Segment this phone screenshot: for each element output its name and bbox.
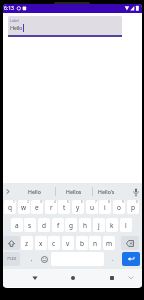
button[interactable] — [39, 252, 50, 266]
staticText: t — [63, 203, 66, 212]
staticText: u — [90, 203, 95, 212]
staticText: j — [98, 221, 100, 230]
button[interactable]: w — [18, 200, 30, 214]
staticText: f — [57, 221, 60, 230]
button[interactable]: v — [62, 236, 74, 250]
staticText: 7 — [95, 200, 97, 204]
staticText: p — [131, 203, 135, 212]
staticText: x — [39, 239, 43, 248]
staticText: 8 — [108, 200, 110, 204]
button[interactable]: z — [21, 236, 33, 250]
button[interactable]: o — [113, 200, 125, 214]
staticText: 0 — [136, 200, 138, 204]
staticText: , — [31, 255, 33, 263]
staticText: k — [110, 221, 114, 230]
button[interactable]: g — [65, 218, 77, 232]
button[interactable]: l — [120, 218, 132, 232]
button[interactable]: b — [76, 236, 88, 250]
staticText: q — [8, 203, 12, 212]
staticText: h — [83, 221, 88, 230]
button[interactable]: ?123 — [3, 252, 20, 266]
button[interactable]: h — [79, 218, 91, 232]
staticText: m — [106, 239, 113, 248]
staticText: c — [52, 239, 56, 248]
staticText: v — [66, 239, 70, 248]
button[interactable]: q — [4, 200, 16, 214]
staticText: l — [125, 221, 127, 230]
button[interactable]: e — [31, 200, 43, 214]
button[interactable] — [66, 269, 80, 287]
staticText: 6 — [81, 200, 83, 204]
button[interactable] — [105, 269, 119, 287]
button[interactable]: Hellos — [57, 184, 91, 199]
staticText: Hellos — [66, 188, 82, 195]
button[interactable]: i — [99, 200, 111, 214]
staticText: 5 — [67, 200, 69, 204]
staticText: Label — [10, 18, 20, 23]
staticText: ?123 — [7, 256, 17, 262]
button[interactable]: n — [89, 236, 101, 250]
staticText: 4 — [54, 200, 56, 204]
button[interactable]: . — [108, 252, 118, 266]
staticText: e — [35, 203, 39, 212]
staticText: i — [104, 203, 106, 212]
staticText: Hello's — [98, 188, 115, 195]
staticText: Hello — [10, 24, 23, 32]
button[interactable]: r — [45, 200, 57, 214]
staticText: r — [50, 203, 53, 212]
staticText: 1 — [13, 200, 15, 204]
staticText: a — [15, 221, 19, 230]
button[interactable]: x — [35, 236, 47, 250]
staticText: g — [69, 221, 73, 230]
button[interactable] — [3, 183, 13, 200]
staticText: d — [42, 221, 46, 230]
staticText: . — [112, 255, 114, 263]
button[interactable]: m — [103, 236, 115, 250]
staticText: Hello — [28, 188, 41, 195]
button[interactable]: Hello's — [93, 184, 119, 199]
button[interactable]: j — [93, 218, 105, 232]
button[interactable]: s — [24, 218, 36, 232]
staticText: 3 — [40, 200, 42, 204]
button[interactable]: k — [106, 218, 118, 232]
button[interactable] — [125, 269, 137, 287]
button[interactable] — [130, 184, 142, 200]
button[interactable] — [3, 236, 20, 250]
staticText: b — [80, 239, 84, 248]
staticText: z — [25, 239, 29, 248]
button[interactable]: d — [38, 218, 50, 232]
staticText: s — [28, 221, 32, 230]
button[interactable]: u — [86, 200, 98, 214]
staticText: 2 — [27, 200, 29, 204]
button[interactable]: a — [11, 218, 23, 232]
staticText: n — [93, 239, 98, 248]
button[interactable]: , — [26, 252, 38, 266]
staticText: w — [21, 203, 27, 212]
button[interactable]: t — [58, 200, 70, 214]
button[interactable] — [28, 269, 42, 287]
button[interactable]: y — [72, 200, 84, 214]
staticText: 9 — [122, 200, 124, 204]
staticText: 6:13 — [4, 5, 14, 12]
button[interactable]: f — [52, 218, 64, 232]
button[interactable]: c — [48, 236, 60, 250]
staticText: o — [117, 203, 121, 212]
button[interactable]: p — [127, 200, 139, 214]
staticText: y — [76, 203, 80, 212]
button[interactable] — [122, 252, 140, 266]
button[interactable] — [121, 236, 139, 250]
button[interactable]: Label — [8, 16, 122, 37]
button[interactable]: Hello — [14, 184, 54, 199]
